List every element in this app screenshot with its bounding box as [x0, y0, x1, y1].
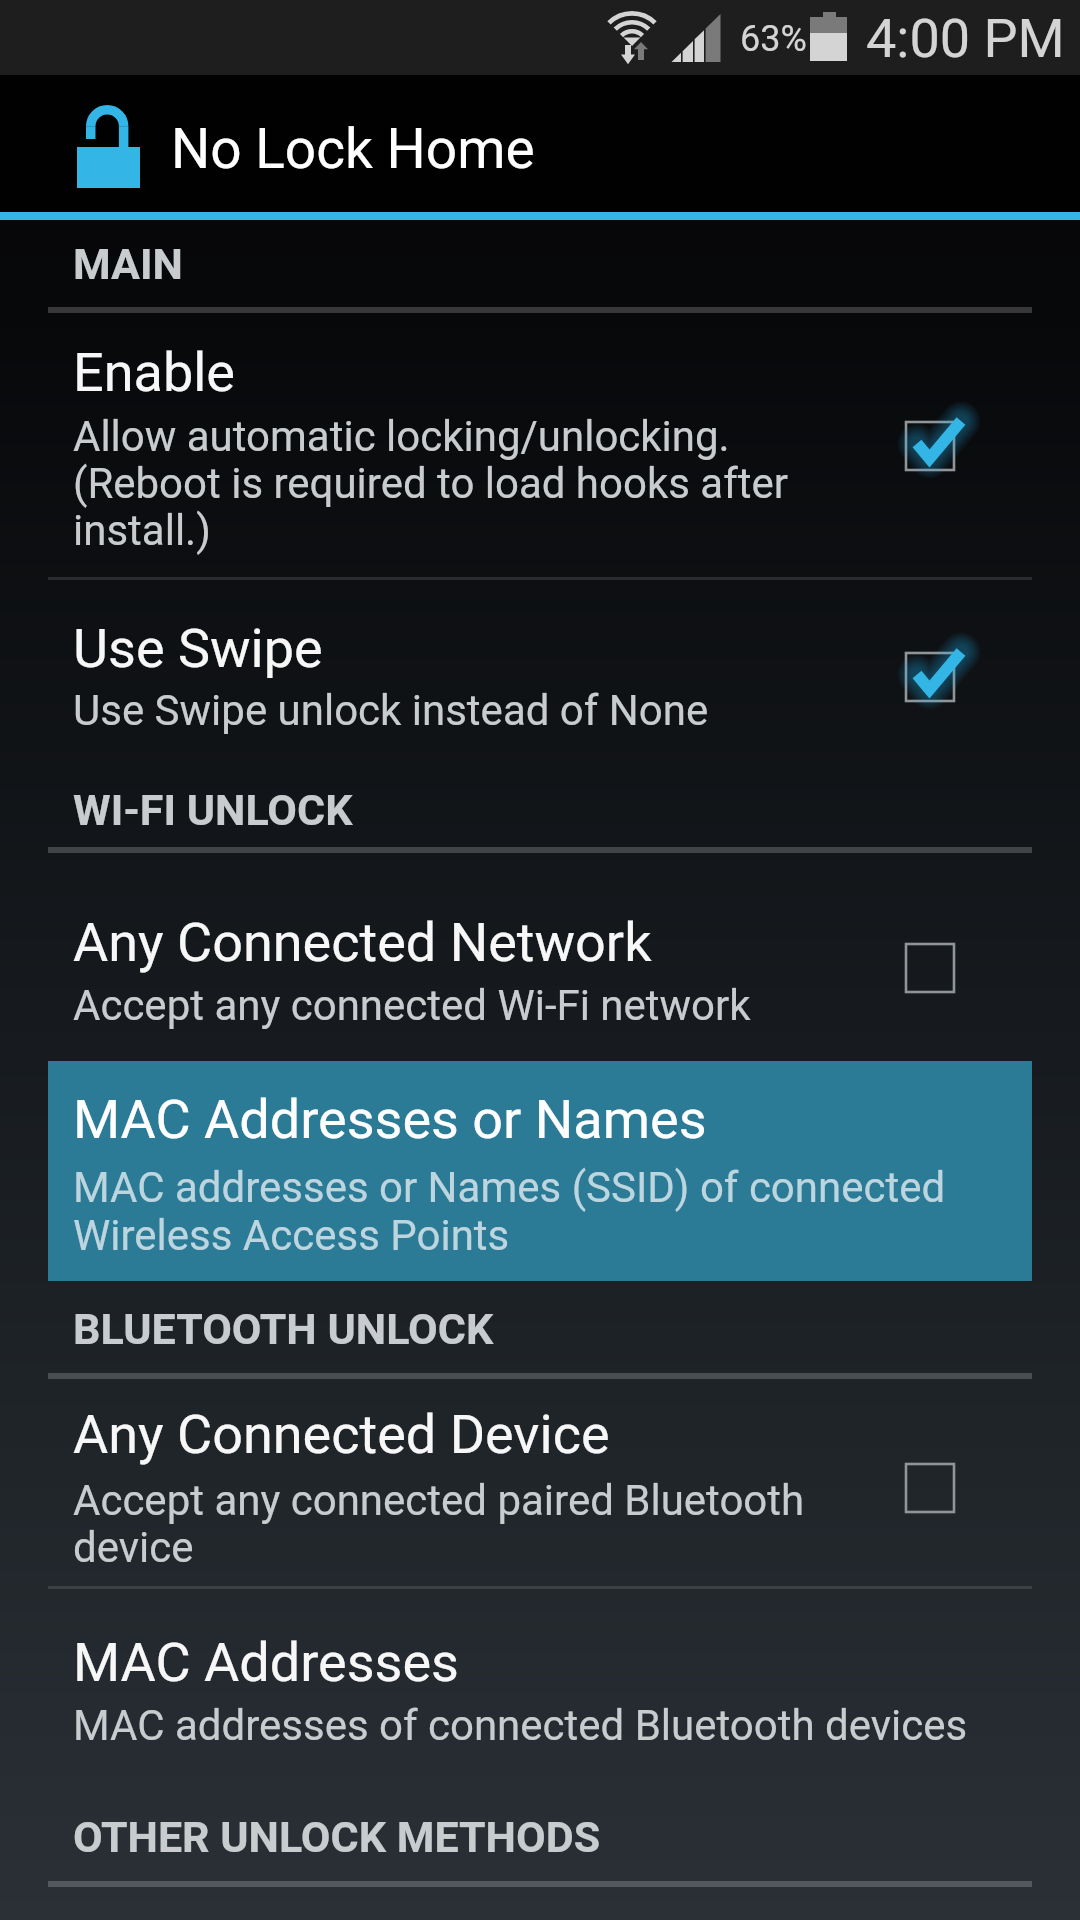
- button[interactable]: Enabled, checked: [870, 386, 990, 506]
- button[interactable]: Any Connected Device: [0, 1383, 1080, 1586]
- staticText: MAC addresses or Names (SSID) of connect…: [73, 1163, 993, 1260]
- staticText: Any Connected Device: [73, 1403, 610, 1466]
- staticText: Accept any connected Wi-Fi network: [73, 981, 751, 1030]
- button[interactable]: Use Swipe: [0, 580, 1080, 760]
- staticText: MAC addresses of connected Bluetooth dev…: [73, 1701, 968, 1750]
- staticText: No Lock Home: [171, 117, 535, 181]
- staticText: Enable: [73, 341, 235, 404]
- staticText: OTHER UNLOCK METHODS: [73, 1812, 601, 1862]
- staticText: Allow automatic locking/unlocking. (Rebo…: [73, 412, 818, 555]
- staticText: WI-FI UNLOCK: [73, 785, 353, 835]
- staticText: 63%: [740, 18, 807, 60]
- button[interactable]: MAC Addresses or Names: [48, 1061, 1032, 1281]
- button[interactable]: Enabled, checked: [870, 617, 990, 737]
- button[interactable]: No Lock Home, up: [0, 75, 1080, 212]
- staticText: Use Swipe: [73, 617, 323, 680]
- staticText: BLUETOOTH UNLOCK: [73, 1304, 494, 1354]
- staticText: Use Swipe unlock instead of None: [73, 686, 709, 735]
- staticText: Accept any connected paired Bluetooth de…: [73, 1476, 843, 1572]
- staticText: MAIN: [73, 239, 183, 289]
- button[interactable]: Disabled, unchecked: [870, 908, 990, 1028]
- button[interactable]: Enable: [0, 316, 1080, 577]
- staticText: 4:00 PM: [866, 7, 1065, 70]
- button[interactable]: MAC Addresses: [0, 1589, 1080, 1779]
- button[interactable]: Any Connected Network: [0, 857, 1080, 1052]
- button[interactable]: Disabled, unchecked: [870, 1428, 990, 1548]
- staticText: MAC Addresses or Names: [73, 1088, 707, 1151]
- staticText: MAC Addresses: [73, 1631, 459, 1694]
- staticText: Any Connected Network: [73, 911, 652, 974]
